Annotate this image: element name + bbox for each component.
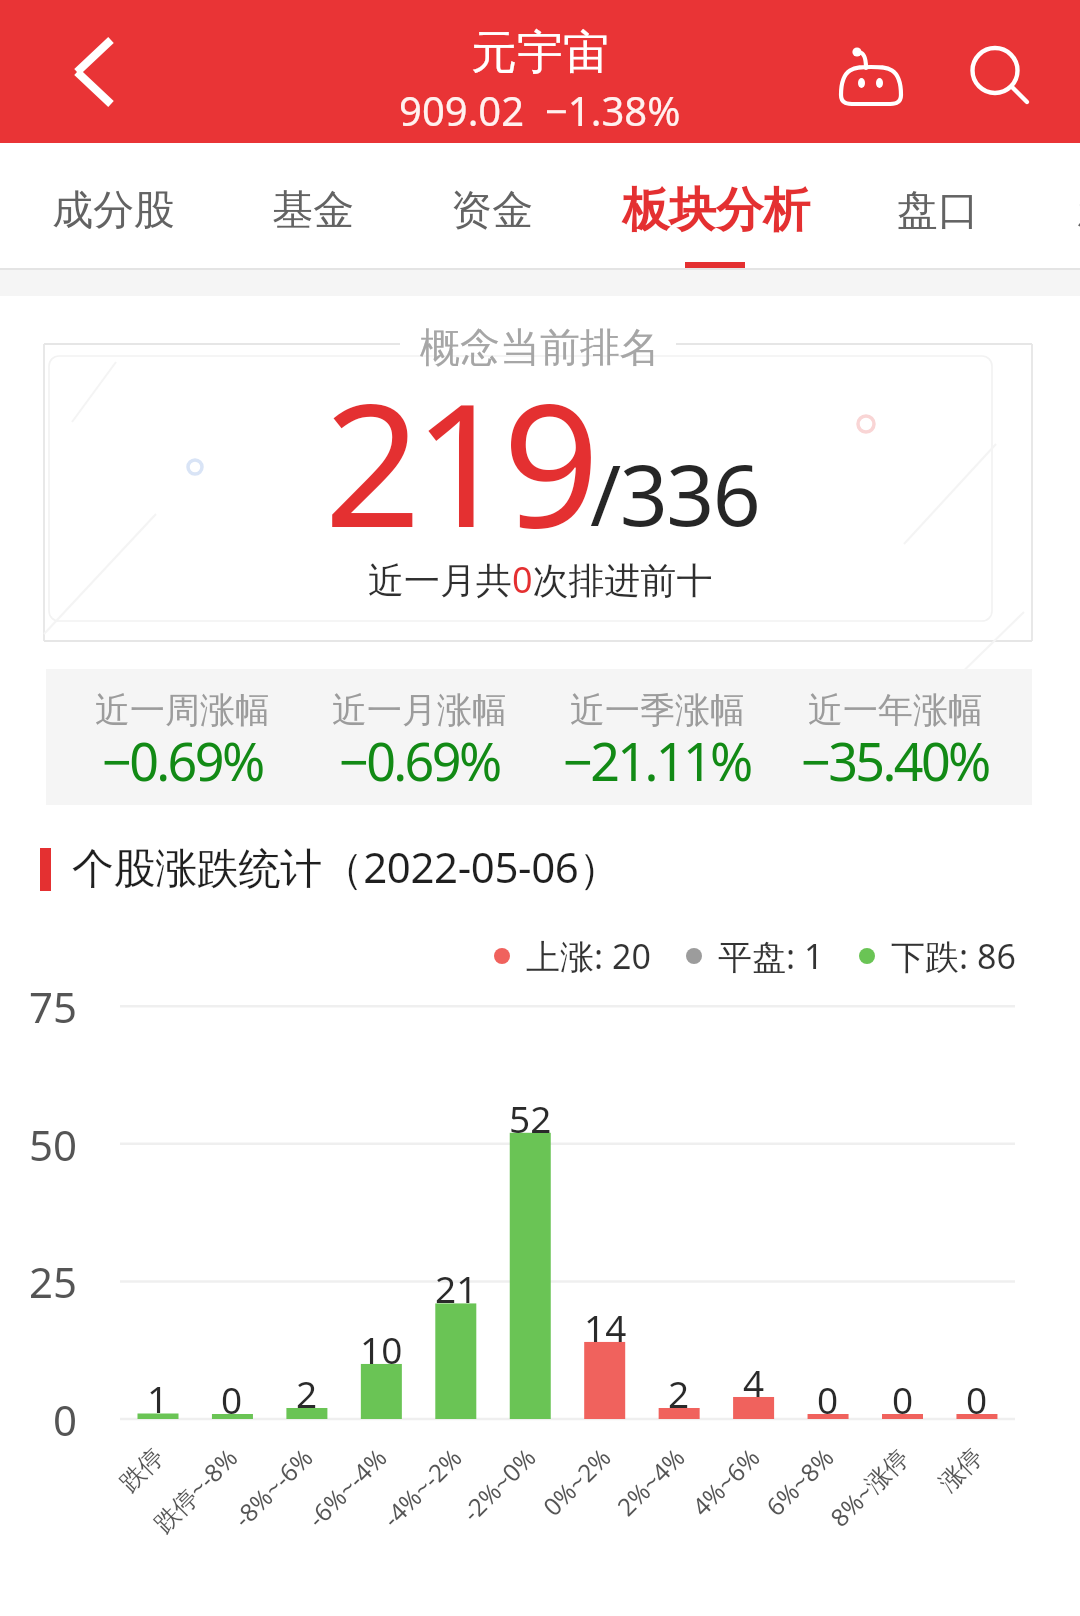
staticText: 涨停 [932,1441,989,1498]
staticText: 成分股 [52,185,175,237]
staticText: 50 [29,1116,78,1173]
staticText: −0.69% [102,725,263,796]
staticText: 0 [221,1374,243,1424]
staticText: −0.69% [339,725,500,796]
staticText: −35.40% [801,725,989,796]
staticText: 新 [1077,185,1080,237]
staticText: -4%~-2% [375,1441,468,1534]
button[interactable]: 近一季涨幅 [538,669,776,805]
staticText: 21 [435,1263,478,1313]
staticText: 8%~涨停 [823,1441,915,1533]
staticText: 近一月涨幅 [332,688,507,732]
button[interactable]: 个股涨跌统计（2022-05-06） [30,836,621,896]
staticText: 0%~2% [535,1441,617,1523]
staticText: 跌停 [113,1441,170,1498]
staticText: 52 [509,1093,552,1143]
staticText: 跌停~-8% [146,1441,245,1539]
button[interactable]: 近一月涨幅 [301,669,538,805]
button[interactable]: 上涨: 20 [494,933,651,979]
button[interactable]: 近一年涨幅 [776,669,1014,805]
staticText: 近一月共0次排进前十 [368,555,713,604]
staticText: 10 [360,1324,403,1374]
staticText: 上涨: 20 [526,933,651,979]
staticText: 概念当前排名 [420,322,660,372]
staticText: 14 [584,1302,627,1352]
button[interactable]: 下跌: 86 [859,933,1016,979]
staticText: 板块分析 [622,181,810,240]
staticText: 1 [147,1373,169,1423]
staticText: 基金 [272,185,354,237]
staticText: 6%~8% [758,1441,840,1523]
staticText: 0 [53,1391,78,1448]
staticText: 资金 [451,185,533,237]
button[interactable]: Back [36,26,128,118]
staticText: 0 [892,1374,914,1424]
staticText: 909.02 −1.38% [399,83,681,137]
button[interactable]: 盘口 [838,143,1038,268]
button[interactable]: 平盘: 1 [686,933,824,979]
staticText: -2%~0% [455,1441,543,1528]
staticText: 下跌: 86 [891,933,1016,979]
staticText: 219 [324,345,592,577]
staticText: -8%~-6% [226,1441,319,1534]
staticText: /336 [590,436,760,550]
staticText: 盘口 [897,185,979,237]
staticText: 近一季涨幅 [570,688,745,732]
staticText: 2 [296,1368,318,1418]
staticText: 元宇宙 [471,24,609,82]
staticText: 0 [817,1374,839,1424]
staticText: −21.11% [563,725,751,796]
button[interactable]: 基金 [213,143,413,268]
staticText: 2 [668,1368,690,1418]
staticText: 75 [29,978,78,1035]
staticText: 2%~4% [609,1441,691,1523]
staticText: 近一年涨幅 [808,688,983,732]
button[interactable]: 资金 [392,143,592,268]
staticText: 个股涨跌统计（2022-05-06） [72,838,621,895]
staticText: 近一周涨幅 [95,688,270,732]
button[interactable]: 近一周涨幅 [64,669,301,805]
staticText: 4 [743,1357,765,1407]
staticText: 0 [966,1374,988,1424]
staticText: 4%~6% [684,1441,766,1523]
staticText: 25 [29,1253,78,1310]
button[interactable]: Search [955,30,1047,122]
button[interactable]: AI assistant [826,36,918,128]
staticText: -6%~-4% [300,1441,393,1534]
button[interactable]: 成分股 [13,143,213,268]
staticText: 平盘: 1 [718,933,824,979]
button[interactable]: 板块分析 [616,143,816,268]
